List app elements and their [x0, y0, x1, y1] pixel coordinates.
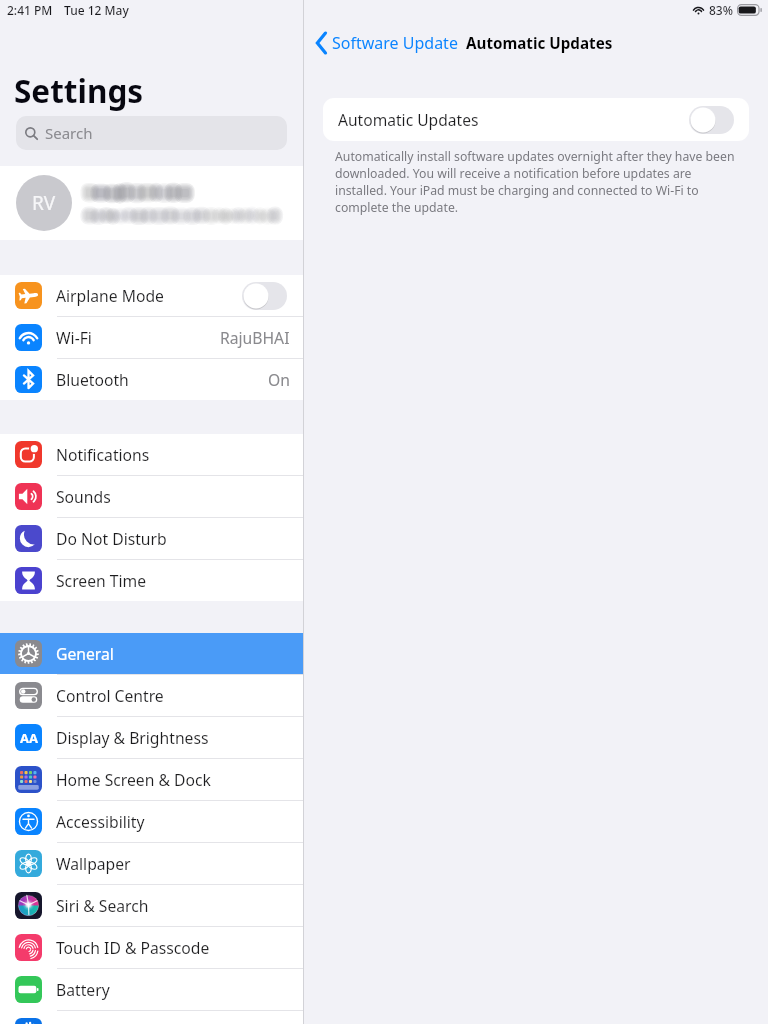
button[interactable]: Siri & Search	[0, 885, 303, 926]
staticText: Control Centre	[56, 685, 164, 706]
staticText: RV	[32, 190, 56, 216]
button[interactable]: Search	[16, 116, 287, 150]
button[interactable]: General	[0, 633, 303, 674]
staticText: Battery	[56, 979, 110, 1000]
staticText: Settings	[14, 69, 144, 112]
staticText: Bluetooth	[56, 369, 129, 390]
staticText: Wallpaper	[56, 853, 131, 874]
staticText: Tue 12 May	[64, 2, 129, 18]
staticText: Search	[45, 123, 93, 143]
staticText: 83%	[709, 2, 733, 18]
staticText: Accessibility	[56, 811, 145, 832]
button[interactable]: Toggle off	[242, 282, 287, 310]
button[interactable]: Screen Time	[0, 560, 303, 601]
staticText: AA	[20, 729, 38, 747]
button[interactable]: RV	[0, 166, 303, 240]
staticText: Airplane Mode	[56, 285, 164, 306]
button[interactable]: Sounds	[0, 476, 303, 517]
staticText: RajuBHAI	[220, 327, 290, 348]
staticText: installed. Your iPad must be charging an…	[335, 182, 699, 199]
button[interactable]: Privacy	[0, 1011, 303, 1024]
staticText: Siri & Search	[56, 895, 149, 916]
button[interactable]: Toggle off	[689, 106, 734, 134]
staticText: General	[56, 643, 114, 664]
staticText: Touch ID & Passcode	[56, 937, 210, 958]
staticText: complete the update.	[335, 199, 459, 216]
button[interactable]: Automatic Updates	[323, 98, 749, 141]
staticText: Automatic Updates	[338, 109, 479, 130]
button[interactable]: Touch ID & Passcode	[0, 927, 303, 968]
staticText: Home Screen & Dock	[56, 769, 211, 790]
button[interactable]: Do Not Disturb	[0, 518, 303, 559]
button[interactable]: Wallpaper	[0, 843, 303, 884]
staticText: Automatically install software updates o…	[335, 148, 735, 165]
button[interactable]: Back to Software Update	[314, 32, 458, 54]
staticText: Wi-Fi	[56, 327, 92, 348]
staticText: Screen Time	[56, 570, 147, 591]
button[interactable]: Accessibility	[0, 801, 303, 842]
staticText: Automatic Updates	[466, 33, 613, 54]
button[interactable]: Control Centre	[0, 675, 303, 716]
staticText: downloaded. You will receive a notificat…	[335, 165, 692, 182]
button[interactable]: Wi-Fi	[0, 317, 303, 358]
button[interactable]: Notifications	[0, 434, 303, 475]
staticText: 2:41 PM	[7, 2, 53, 18]
staticText: Do Not Disturb	[56, 528, 167, 549]
staticText: Notifications	[56, 444, 150, 465]
button[interactable]: Airplane Mode	[0, 275, 303, 316]
staticText: Display & Brightness	[56, 727, 209, 748]
button[interactable]: Home Screen & Dock	[0, 759, 303, 800]
staticText: On	[268, 369, 290, 390]
staticText: Software Update	[332, 32, 458, 54]
button[interactable]: AA	[0, 717, 303, 758]
staticText: Sounds	[56, 486, 111, 507]
button[interactable]: Bluetooth	[0, 359, 303, 400]
button[interactable]: Battery	[0, 969, 303, 1010]
